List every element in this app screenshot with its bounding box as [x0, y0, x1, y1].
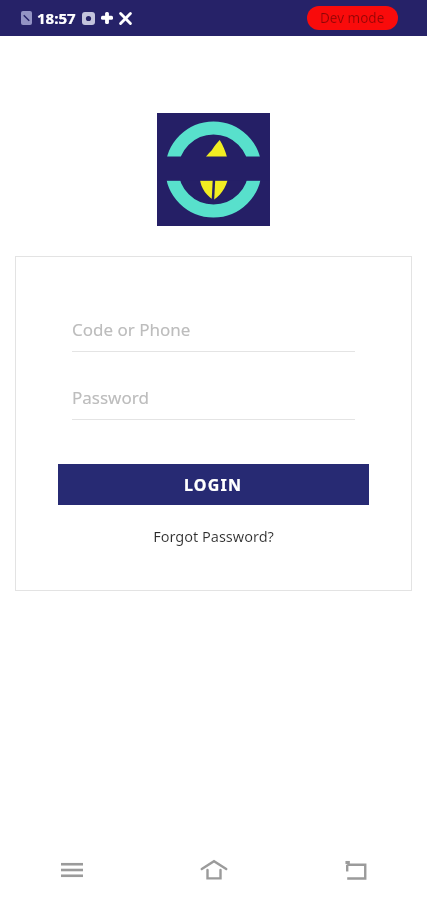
button[interactable]: Code or Phone	[72, 318, 355, 352]
button[interactable]: Back	[285, 840, 427, 900]
staticText: Forgot Password?	[153, 526, 274, 546]
button[interactable]: Password	[72, 386, 355, 420]
staticText: Dev mode	[320, 9, 385, 27]
button[interactable]: Recent apps	[0, 840, 143, 900]
button[interactable]: LOGIN	[58, 464, 369, 505]
staticText: Code or Phone	[72, 318, 191, 341]
button[interactable]: Home	[143, 840, 285, 900]
button[interactable]: Dev mode	[307, 6, 398, 30]
staticText: 18:57	[37, 8, 76, 28]
button[interactable]: Forgot Password?	[145, 523, 282, 549]
staticText: LOGIN	[184, 474, 243, 496]
staticText: Password	[72, 386, 149, 409]
